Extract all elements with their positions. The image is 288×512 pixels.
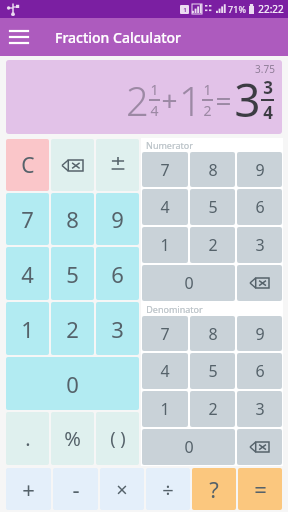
staticText: + (161, 81, 178, 119)
button[interactable]: 3.75 (6, 60, 282, 134)
staticText: 4 (21, 259, 34, 289)
button[interactable]: 6 (96, 247, 139, 300)
staticText: 0 (66, 369, 79, 399)
button[interactable]: 9 (237, 316, 282, 351)
button[interactable]: ( ) (96, 412, 139, 465)
staticText: 1 (183, 6, 187, 14)
staticText: 3 (111, 314, 124, 344)
staticText: ( ) (110, 426, 126, 451)
button[interactable]: 0 (142, 265, 235, 301)
staticText: Denominator (146, 303, 203, 315)
staticText: 2 (203, 101, 212, 120)
staticText: 7 (21, 204, 34, 234)
staticText: 1 (203, 80, 212, 99)
staticText: 71% (228, 3, 246, 15)
staticText: Fraction Calculator (55, 28, 181, 47)
staticText: 4 (263, 101, 273, 124)
button[interactable]: 8 (51, 193, 94, 245)
staticText: C (21, 151, 35, 180)
staticText: 9 (111, 204, 124, 234)
button[interactable]: 5 (190, 189, 235, 225)
staticText: 6 (255, 196, 265, 218)
staticText: 6 (111, 259, 124, 289)
staticText: 3 (234, 68, 261, 131)
staticText: 2 (208, 398, 218, 420)
staticText: 3.75 (255, 62, 275, 76)
button[interactable]: 3 (237, 227, 282, 263)
button[interactable]: 4 (142, 353, 188, 389)
staticText: = (254, 474, 267, 504)
button[interactable]: 4 (142, 189, 188, 225)
staticText: 5 (66, 259, 79, 289)
staticText: 1 (21, 314, 34, 344)
staticText: × (116, 476, 128, 503)
button[interactable]: Backspace Denominator (237, 429, 282, 465)
staticText: 5 (208, 196, 218, 218)
button[interactable]: 3 (237, 391, 282, 427)
button[interactable]: Backspace (51, 139, 94, 191)
button[interactable]: 1 (142, 391, 188, 427)
button[interactable]: + (6, 468, 51, 510)
button[interactable]: 0 (6, 357, 139, 410)
button[interactable]: 8 (190, 316, 235, 351)
button[interactable]: 1 (142, 227, 188, 263)
button[interactable]: 2 (190, 391, 235, 427)
button[interactable]: C (6, 139, 49, 191)
button[interactable]: = (238, 468, 282, 510)
staticText: 0 (184, 436, 194, 458)
button[interactable]: 8 (190, 152, 235, 187)
button[interactable]: 5 (190, 353, 235, 389)
staticText: - (72, 474, 80, 504)
button[interactable]: × (100, 468, 144, 510)
staticText: 7 (160, 323, 170, 345)
button[interactable]: 7 (6, 193, 49, 245)
staticText: 2 (126, 73, 149, 127)
staticText: 22:22 (258, 2, 284, 16)
staticText: 1 (179, 73, 202, 127)
button[interactable]: - (53, 468, 98, 510)
button[interactable]: . (6, 412, 49, 465)
staticText: . (25, 425, 31, 452)
staticText: 9 (255, 323, 265, 345)
button[interactable]: 9 (96, 193, 139, 245)
staticText: 5 (208, 360, 218, 382)
staticText: 8 (66, 204, 79, 234)
button[interactable]: 6 (237, 353, 282, 389)
button[interactable]: Backspace Numerator (237, 265, 282, 301)
staticText: 7 (160, 159, 170, 181)
button[interactable]: % (51, 412, 94, 465)
staticText: 2 (208, 234, 218, 256)
button[interactable]: 0 (142, 429, 235, 465)
staticText: 3 (263, 76, 273, 99)
button[interactable]: 1 (6, 302, 49, 355)
button[interactable]: 5 (51, 247, 94, 300)
button[interactable]: Open navigation menu (0, 18, 38, 56)
staticText: 1 (160, 234, 170, 256)
button[interactable]: 9 (237, 152, 282, 187)
staticText: 0 (184, 272, 194, 294)
staticText: 2 (66, 314, 79, 344)
staticText: 8 (208, 323, 218, 345)
button[interactable]: ? (192, 468, 236, 510)
staticText: + (22, 474, 35, 504)
button[interactable]: 2 (190, 227, 235, 263)
staticText: % (64, 425, 81, 452)
staticText: 1 (160, 398, 170, 420)
button[interactable]: 4 (6, 247, 49, 300)
button[interactable]: 7 (142, 152, 188, 187)
staticText: 3 (255, 234, 265, 256)
staticText: ? (209, 474, 219, 504)
button[interactable]: 3 (96, 302, 139, 355)
staticText: = (215, 81, 232, 119)
staticText: 4 (150, 101, 159, 120)
staticText: 8 (208, 159, 218, 181)
staticText: 4 (160, 196, 170, 218)
staticText: Numerator (146, 139, 193, 151)
button[interactable]: 6 (237, 189, 282, 225)
staticText: 4 (160, 360, 170, 382)
button[interactable]: 7 (142, 316, 188, 351)
button[interactable]: Plus minus sign (96, 139, 139, 191)
button[interactable]: ÷ (146, 468, 190, 510)
button[interactable]: 2 (51, 302, 94, 355)
staticText: 3 (255, 398, 265, 420)
